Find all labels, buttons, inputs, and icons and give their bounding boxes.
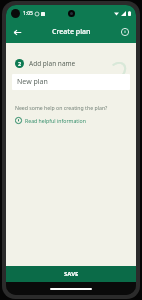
staticText: 2 <box>18 60 22 67</box>
staticText: New plan <box>17 77 48 87</box>
button[interactable]: SAVE <box>6 266 136 282</box>
staticText: SAVE <box>64 270 79 278</box>
button[interactable]: Help information <box>117 24 133 40</box>
staticText: 1:05 <box>23 10 33 17</box>
button[interactable]: New plan <box>12 74 130 90</box>
staticText: Create plan <box>52 27 91 37</box>
staticText: Read helpful information <box>25 117 86 124</box>
button[interactable]: Back <box>9 24 25 40</box>
staticText: Need some help on creating the plan? <box>15 104 108 111</box>
staticText: 2 <box>110 51 130 97</box>
button[interactable]: Read helpful information <box>15 116 86 125</box>
staticText: Add plan name <box>29 59 76 68</box>
